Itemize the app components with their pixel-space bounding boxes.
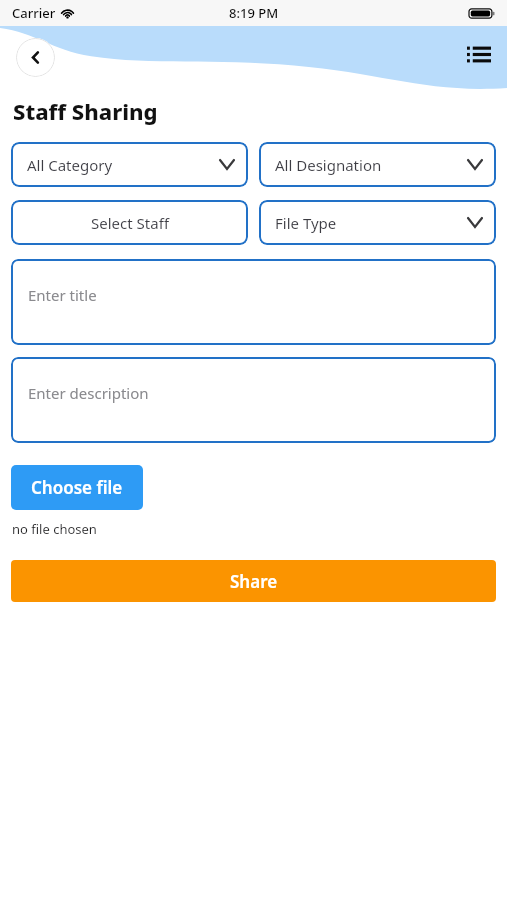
button[interactable]: File Type [259,200,496,245]
staticText: Share [230,570,278,593]
staticText: Staff Sharing [13,96,158,126]
button[interactable]: Enter title [11,259,496,345]
button[interactable]: Enter description [11,357,496,443]
staticText: no file chosen [12,520,97,538]
button[interactable]: Select Staff [11,200,248,245]
button[interactable]: All Category [11,142,248,187]
staticText: Select Staff [91,213,169,233]
button[interactable]: Choose file [11,465,143,510]
button[interactable]: Back [16,38,55,77]
button[interactable]: Share [11,560,496,602]
staticText: All Category [27,155,113,175]
staticText: Enter title [28,285,97,305]
staticText: Carrier [12,4,56,22]
button[interactable]: All Designation [259,142,496,187]
staticText: Choose file [31,476,123,499]
staticText: Enter description [28,383,149,403]
staticText: 8:19 PM [229,4,279,22]
staticText: All Designation [275,155,382,175]
button[interactable]: Menu [461,36,497,72]
staticText: File Type [275,213,337,233]
